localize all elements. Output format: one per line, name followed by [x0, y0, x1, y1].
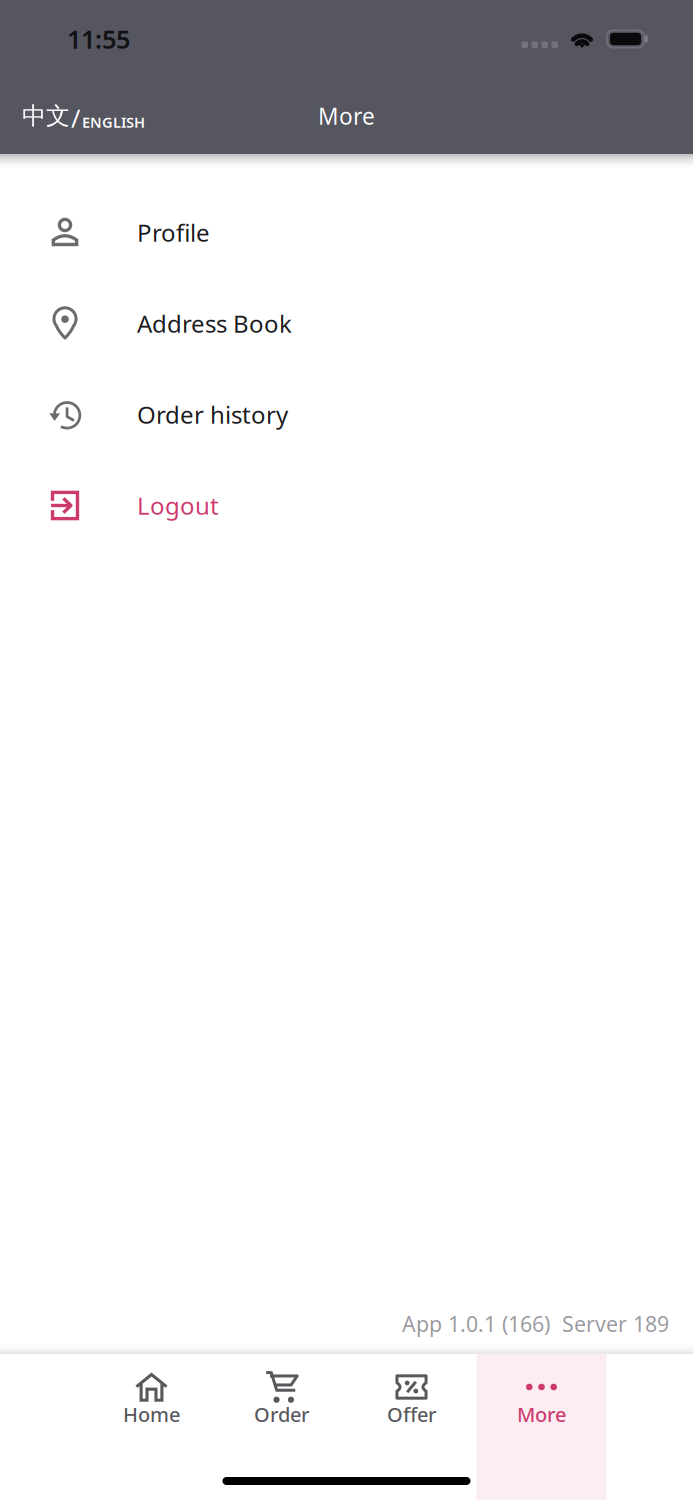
staticText: 中文 — [22, 101, 70, 131]
staticText: ENGLISH — [82, 112, 145, 132]
button[interactable]: Address Book — [0, 278, 693, 369]
button[interactable]: 中文 — [0, 78, 161, 154]
staticText: Home — [123, 1401, 180, 1428]
staticText: App 1.0.1 (166) Server 189 — [402, 1310, 669, 1338]
staticText: Profile — [137, 217, 210, 248]
button[interactable]: Profile — [0, 187, 693, 278]
button[interactable]: Logout — [0, 460, 693, 551]
button[interactable]: Order — [216, 1354, 346, 1500]
staticText: Address Book — [137, 308, 292, 339]
staticText: More — [318, 101, 375, 131]
button[interactable]: Order history — [0, 369, 693, 460]
staticText: Logout — [137, 490, 219, 521]
staticText: / — [71, 101, 80, 135]
button[interactable]: Home — [86, 1354, 216, 1500]
staticText: Offer — [387, 1401, 436, 1428]
staticText: Order — [254, 1401, 309, 1428]
staticText: 11:55 — [67, 22, 130, 56]
button[interactable]: Offer — [346, 1354, 476, 1500]
button[interactable]: More — [476, 1354, 606, 1500]
staticText: More — [517, 1401, 566, 1428]
staticText: Order history — [137, 399, 288, 430]
